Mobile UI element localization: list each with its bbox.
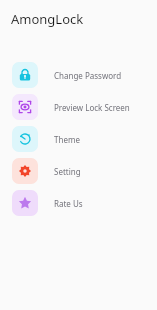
button[interactable]: Theme bbox=[0, 123, 157, 155]
staticText: Setting bbox=[54, 166, 81, 177]
staticText: Preview Lock Screen bbox=[54, 102, 130, 113]
button[interactable]: Rate Us bbox=[0, 187, 157, 219]
button[interactable]: Preview Lock Screen bbox=[0, 91, 157, 123]
button[interactable]: Setting bbox=[0, 155, 157, 187]
staticText: Theme bbox=[54, 134, 80, 145]
staticText: Rate Us bbox=[54, 198, 83, 209]
button[interactable]: Change Password bbox=[0, 59, 157, 91]
staticText: Change Password bbox=[54, 70, 122, 81]
staticText: AmongLock bbox=[11, 10, 84, 28]
